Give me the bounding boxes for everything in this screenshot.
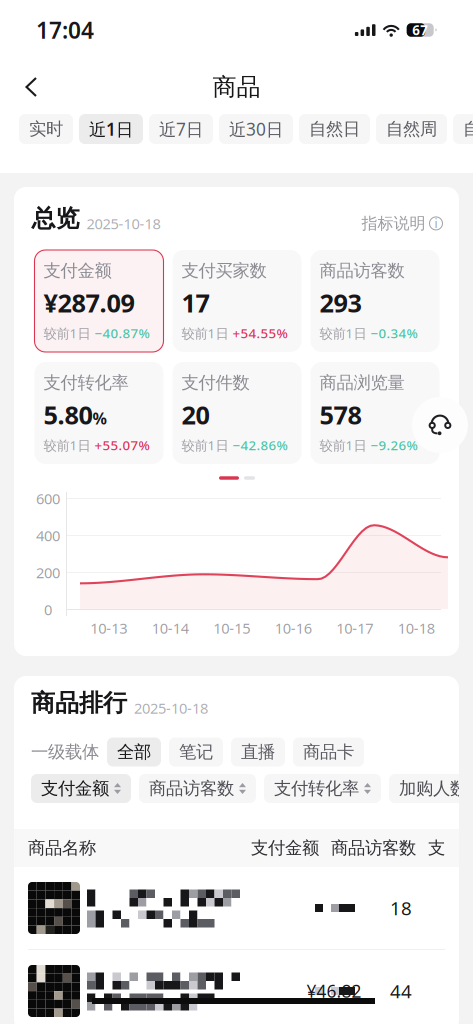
staticText: 自然月	[463, 118, 473, 140]
staticText: 支付转化率	[274, 778, 359, 799]
staticText: 直播	[241, 741, 275, 763]
staticText: 10-14	[152, 618, 189, 638]
staticText: +54.55%	[232, 324, 287, 342]
staticText: 支付件数	[181, 372, 249, 393]
staticText: 商品访客数	[319, 260, 404, 281]
staticText: 较前1日	[181, 436, 228, 454]
button[interactable]: 实时	[19, 114, 73, 144]
staticText: 近7日	[159, 117, 203, 140]
button[interactable]: 直播	[231, 737, 285, 766]
button[interactable]: 加购人数	[389, 774, 473, 803]
staticText: 18	[390, 896, 412, 920]
button[interactable]: 支付转化率	[34, 362, 163, 464]
staticText: 较前1日	[43, 436, 90, 454]
button[interactable]: 商品访客数	[310, 250, 439, 352]
staticText: 较前1日	[43, 324, 90, 342]
staticText: 指标说明	[361, 214, 425, 233]
staticText: 200	[36, 563, 60, 582]
staticText: 支	[428, 837, 445, 859]
button[interactable]: 自然周	[376, 114, 447, 144]
staticText: 10-16	[275, 618, 312, 638]
staticText: 支付金额	[251, 837, 319, 859]
staticText: 总览	[31, 204, 79, 233]
button[interactable]: 返回	[12, 68, 51, 106]
staticText: 实时	[29, 118, 63, 140]
staticText: 较前1日	[181, 324, 228, 342]
staticText: 近1日	[89, 117, 133, 140]
staticText: 5.80	[43, 398, 92, 432]
button[interactable]: 全部	[107, 737, 161, 766]
staticText: 0	[44, 600, 52, 619]
staticText: 2025-10-18	[86, 214, 160, 233]
button[interactable]: 商品访客数	[139, 774, 256, 803]
staticText: −42.86%	[232, 436, 287, 454]
button[interactable]: 自然日	[299, 114, 370, 144]
staticText: 44	[390, 979, 412, 1003]
staticText: 67	[412, 21, 428, 39]
staticText: 较前1日	[319, 324, 366, 342]
button[interactable]: 支付金额	[31, 774, 131, 803]
staticText: 支付转化率	[43, 372, 128, 393]
staticText: +55.07%	[94, 436, 149, 454]
staticText: 笔记	[179, 741, 213, 763]
staticText: 578	[319, 398, 361, 432]
staticText: i	[434, 215, 437, 231]
staticText: 商品访客数	[331, 837, 416, 859]
staticText: 20	[181, 398, 209, 432]
staticText: 支付金额	[43, 260, 111, 281]
staticText: 商品浏览量	[319, 372, 404, 393]
button[interactable]: 近7日	[149, 114, 213, 144]
staticText: ¥287.09	[43, 286, 134, 320]
button[interactable]: 支付件数	[172, 362, 301, 464]
staticText: 一级载体	[31, 741, 99, 763]
button[interactable]: 支付金额	[34, 250, 163, 352]
button[interactable]: 商品浏览量	[310, 362, 439, 464]
staticText: 17	[181, 286, 209, 320]
staticText: 支付买家数	[181, 260, 266, 281]
staticText: 商品名称	[28, 837, 96, 859]
staticText: 自然日	[309, 118, 360, 140]
button[interactable]: 商品卡	[293, 737, 364, 766]
staticText: 商品访客数	[149, 778, 234, 799]
staticText: 400	[36, 526, 60, 545]
staticText: %	[92, 408, 106, 429]
button[interactable]: 18	[14, 867, 459, 949]
staticText: 293	[319, 286, 361, 320]
button[interactable]: 近1日	[79, 114, 143, 144]
staticText: 商品	[212, 72, 260, 102]
staticText: −0.34%	[370, 324, 417, 342]
staticText: 17:04	[36, 15, 94, 45]
staticText: 全部	[117, 741, 151, 763]
staticText: −40.87%	[94, 324, 149, 342]
staticText: −9.26%	[370, 436, 417, 454]
staticText: 商品排行	[31, 688, 127, 718]
button[interactable]: 支付转化率	[264, 774, 381, 803]
staticText: ¥46.82	[306, 979, 361, 1002]
button[interactable]: 指标说明	[361, 214, 442, 233]
staticText: 支付金额	[41, 778, 109, 799]
button[interactable]: 近30日	[219, 114, 293, 144]
staticText: 10-17	[336, 618, 373, 638]
staticText: 近30日	[229, 117, 283, 140]
staticText: 商品卡	[303, 741, 354, 763]
staticText: 2025-10-18	[134, 698, 208, 718]
staticText: 较前1日	[319, 436, 366, 454]
staticText: 10-18	[398, 618, 435, 638]
button[interactable]: ¥46.82	[14, 950, 459, 1024]
staticText: 自然周	[386, 118, 437, 140]
staticText: 加购人数	[399, 778, 467, 799]
staticText: 10-13	[90, 618, 127, 638]
button[interactable]: 自然月	[453, 114, 473, 144]
button[interactable]: 客服	[412, 397, 468, 453]
button[interactable]: 笔记	[169, 737, 223, 766]
button[interactable]: 支付买家数	[172, 250, 301, 352]
staticText: 600	[36, 489, 60, 508]
staticText: 10-15	[213, 618, 250, 638]
